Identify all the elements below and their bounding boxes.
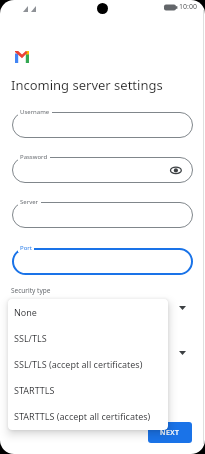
button[interactable] <box>12 202 193 228</box>
button[interactable]: None <box>8 299 168 325</box>
staticText: Username <box>20 108 50 116</box>
button[interactable]: STARTTLS (accept all certificates) <box>8 403 168 429</box>
button[interactable] <box>12 157 193 183</box>
button[interactable] <box>12 112 193 138</box>
staticText: STARTTLS <box>14 384 55 396</box>
staticText: None <box>14 306 37 318</box>
staticText: NEXT <box>160 428 180 438</box>
staticText: SSL/TLS (accept all certificates) <box>14 358 143 370</box>
staticText: Password <box>20 153 48 161</box>
staticText: 10:00 <box>179 2 197 12</box>
staticText: Incoming server settings <box>11 76 163 94</box>
staticText: STARTTLS (accept all certificates) <box>14 410 151 422</box>
button[interactable] <box>12 248 193 275</box>
button[interactable]: SSL/TLS (accept all certificates) <box>8 351 168 377</box>
staticText: SSL/TLS <box>14 332 47 344</box>
staticText: Port <box>20 244 32 252</box>
button[interactable]: STARTTLS <box>8 377 168 403</box>
button[interactable]: SSL/TLS <box>8 325 168 351</box>
staticText: Server <box>20 198 39 206</box>
button[interactable]: NEXT <box>148 422 192 443</box>
staticText: Security type <box>11 286 51 295</box>
